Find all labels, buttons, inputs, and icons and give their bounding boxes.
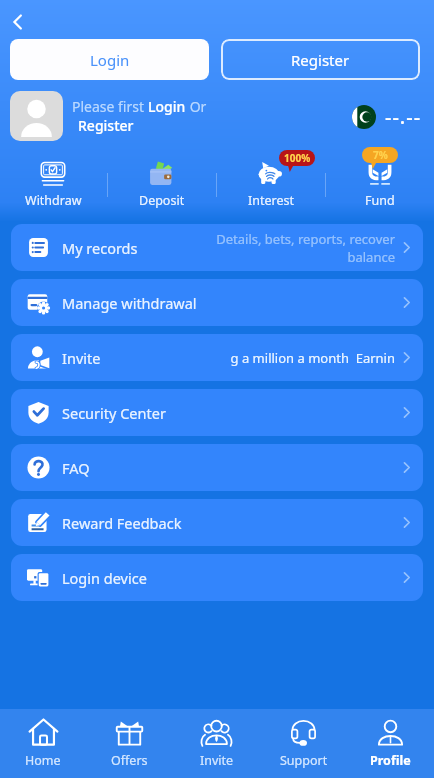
staticText: Support	[280, 752, 328, 769]
button[interactable]: Avatar	[10, 91, 63, 141]
staticText: Login	[148, 97, 186, 116]
button[interactable]: Login	[10, 39, 209, 80]
button[interactable]: My records	[11, 224, 423, 271]
button[interactable]: Back	[4, 8, 32, 36]
button[interactable]: Invite	[11, 334, 423, 381]
button[interactable]: 7%	[326, 161, 434, 209]
staticText: Please first	[72, 97, 148, 116]
button[interactable]: 100%	[217, 161, 325, 209]
button[interactable]: Withdraw	[0, 161, 107, 209]
staticText: Or	[186, 97, 207, 116]
staticText: 100%	[284, 151, 311, 165]
staticText: g a million a month Earnin	[230, 349, 395, 367]
staticText: Details, bets, reports, recover balance	[216, 230, 395, 266]
staticText: Login	[90, 50, 130, 70]
button[interactable]: Login device	[11, 554, 423, 601]
button[interactable]: Deposit	[108, 161, 216, 209]
staticText: Interest	[248, 192, 294, 209]
staticText: Reward Feedback	[62, 513, 182, 533]
staticText: Fund	[365, 192, 395, 209]
staticText: Invite	[62, 348, 101, 368]
button[interactable]: Invite	[173, 709, 260, 778]
staticText: --.--	[385, 103, 422, 130]
button[interactable]: Security Center	[11, 389, 423, 436]
button[interactable]: Support	[260, 709, 347, 778]
staticText: Register	[78, 116, 134, 135]
staticText: Home	[25, 752, 61, 769]
button[interactable]: Offers	[86, 709, 173, 778]
staticText: Register	[291, 50, 350, 70]
staticText: Withdraw	[25, 192, 82, 209]
button[interactable]: Register	[221, 39, 420, 80]
button[interactable]: Reward Feedback	[11, 499, 423, 546]
staticText: FAQ	[62, 458, 90, 478]
button[interactable]: Home	[0, 709, 86, 778]
staticText: Invite	[200, 752, 234, 769]
button[interactable]: --.--	[352, 103, 422, 130]
staticText: Profile	[370, 752, 411, 769]
button[interactable]: Profile	[347, 709, 434, 778]
staticText: My records	[62, 238, 138, 258]
staticText: Offers	[111, 752, 148, 769]
staticText: Login device	[62, 568, 147, 588]
button[interactable]: FAQ	[11, 444, 423, 491]
staticText: Manage withdrawal	[62, 293, 197, 313]
staticText: Security Center	[62, 403, 166, 423]
button[interactable]: Manage withdrawal	[11, 279, 423, 326]
staticText: Deposit	[139, 192, 185, 209]
staticText: 7%	[373, 148, 388, 162]
